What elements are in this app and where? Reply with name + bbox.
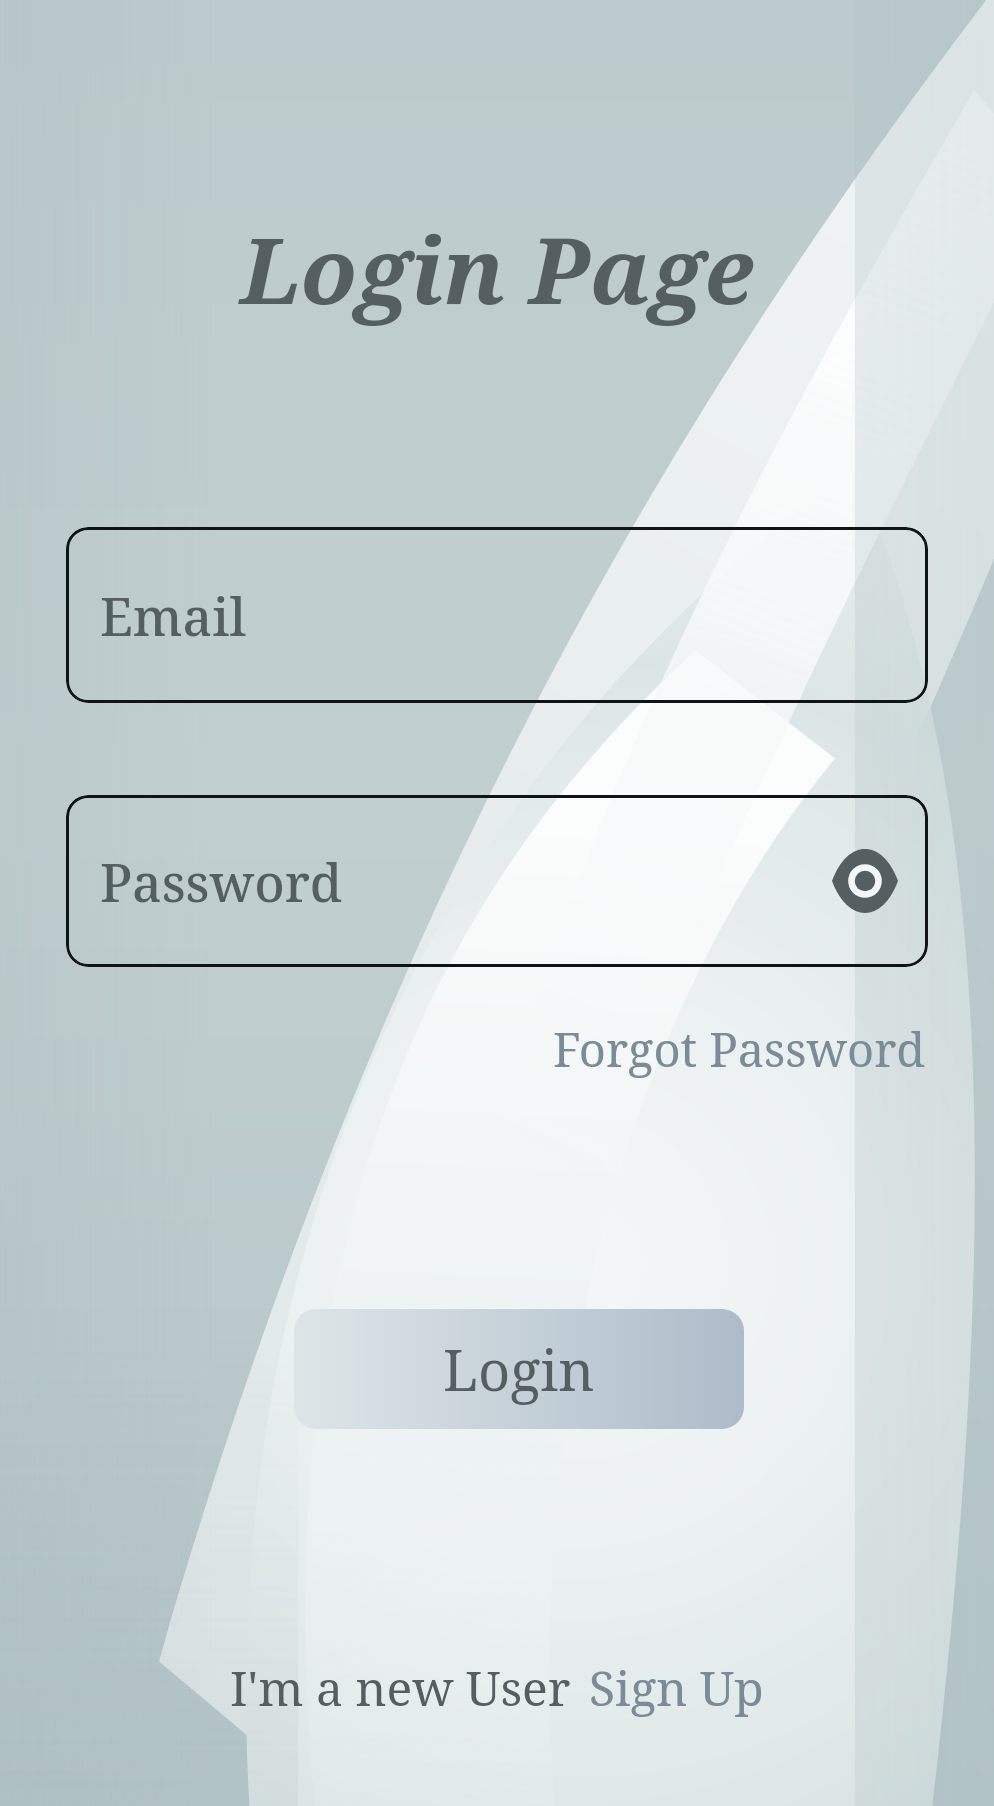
button[interactable]: Forgot Password [547, 1011, 932, 1087]
button[interactable]: Email [66, 527, 928, 703]
button[interactable]: Sign Up [589, 1655, 764, 1720]
staticText: Password [100, 846, 343, 917]
staticText: Login Page [0, 206, 994, 331]
button[interactable]: Show password [828, 844, 902, 918]
staticText: I'm a new User [230, 1655, 571, 1720]
staticText: Login [443, 1331, 595, 1407]
staticText: Forgot Password [553, 1017, 926, 1081]
button[interactable]: Login [294, 1309, 744, 1429]
button[interactable]: Password [66, 795, 928, 967]
staticText: Email [100, 580, 247, 651]
staticText: Sign Up [589, 1655, 764, 1720]
